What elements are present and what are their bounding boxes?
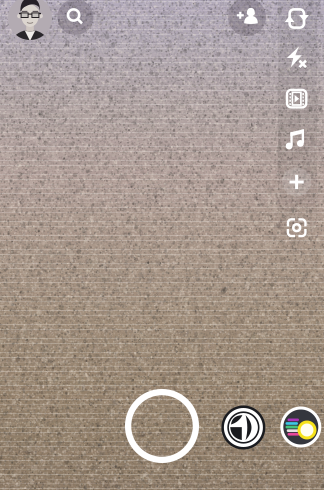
button[interactable]: Flash off [286,46,307,69]
button[interactable]: Scan [287,218,307,237]
button[interactable]: More tools [282,167,311,196]
button[interactable]: Timeline [286,89,307,109]
button[interactable]: Profile [8,0,52,40]
button[interactable]: Sounds [286,129,306,150]
button[interactable]: Search [57,0,93,35]
button[interactable]: Flip camera [287,7,307,30]
button[interactable]: Lenses [221,405,265,449]
button[interactable]: Memories [280,406,321,447]
button[interactable]: Add friends [228,0,266,36]
button[interactable]: Capture [123,387,201,465]
